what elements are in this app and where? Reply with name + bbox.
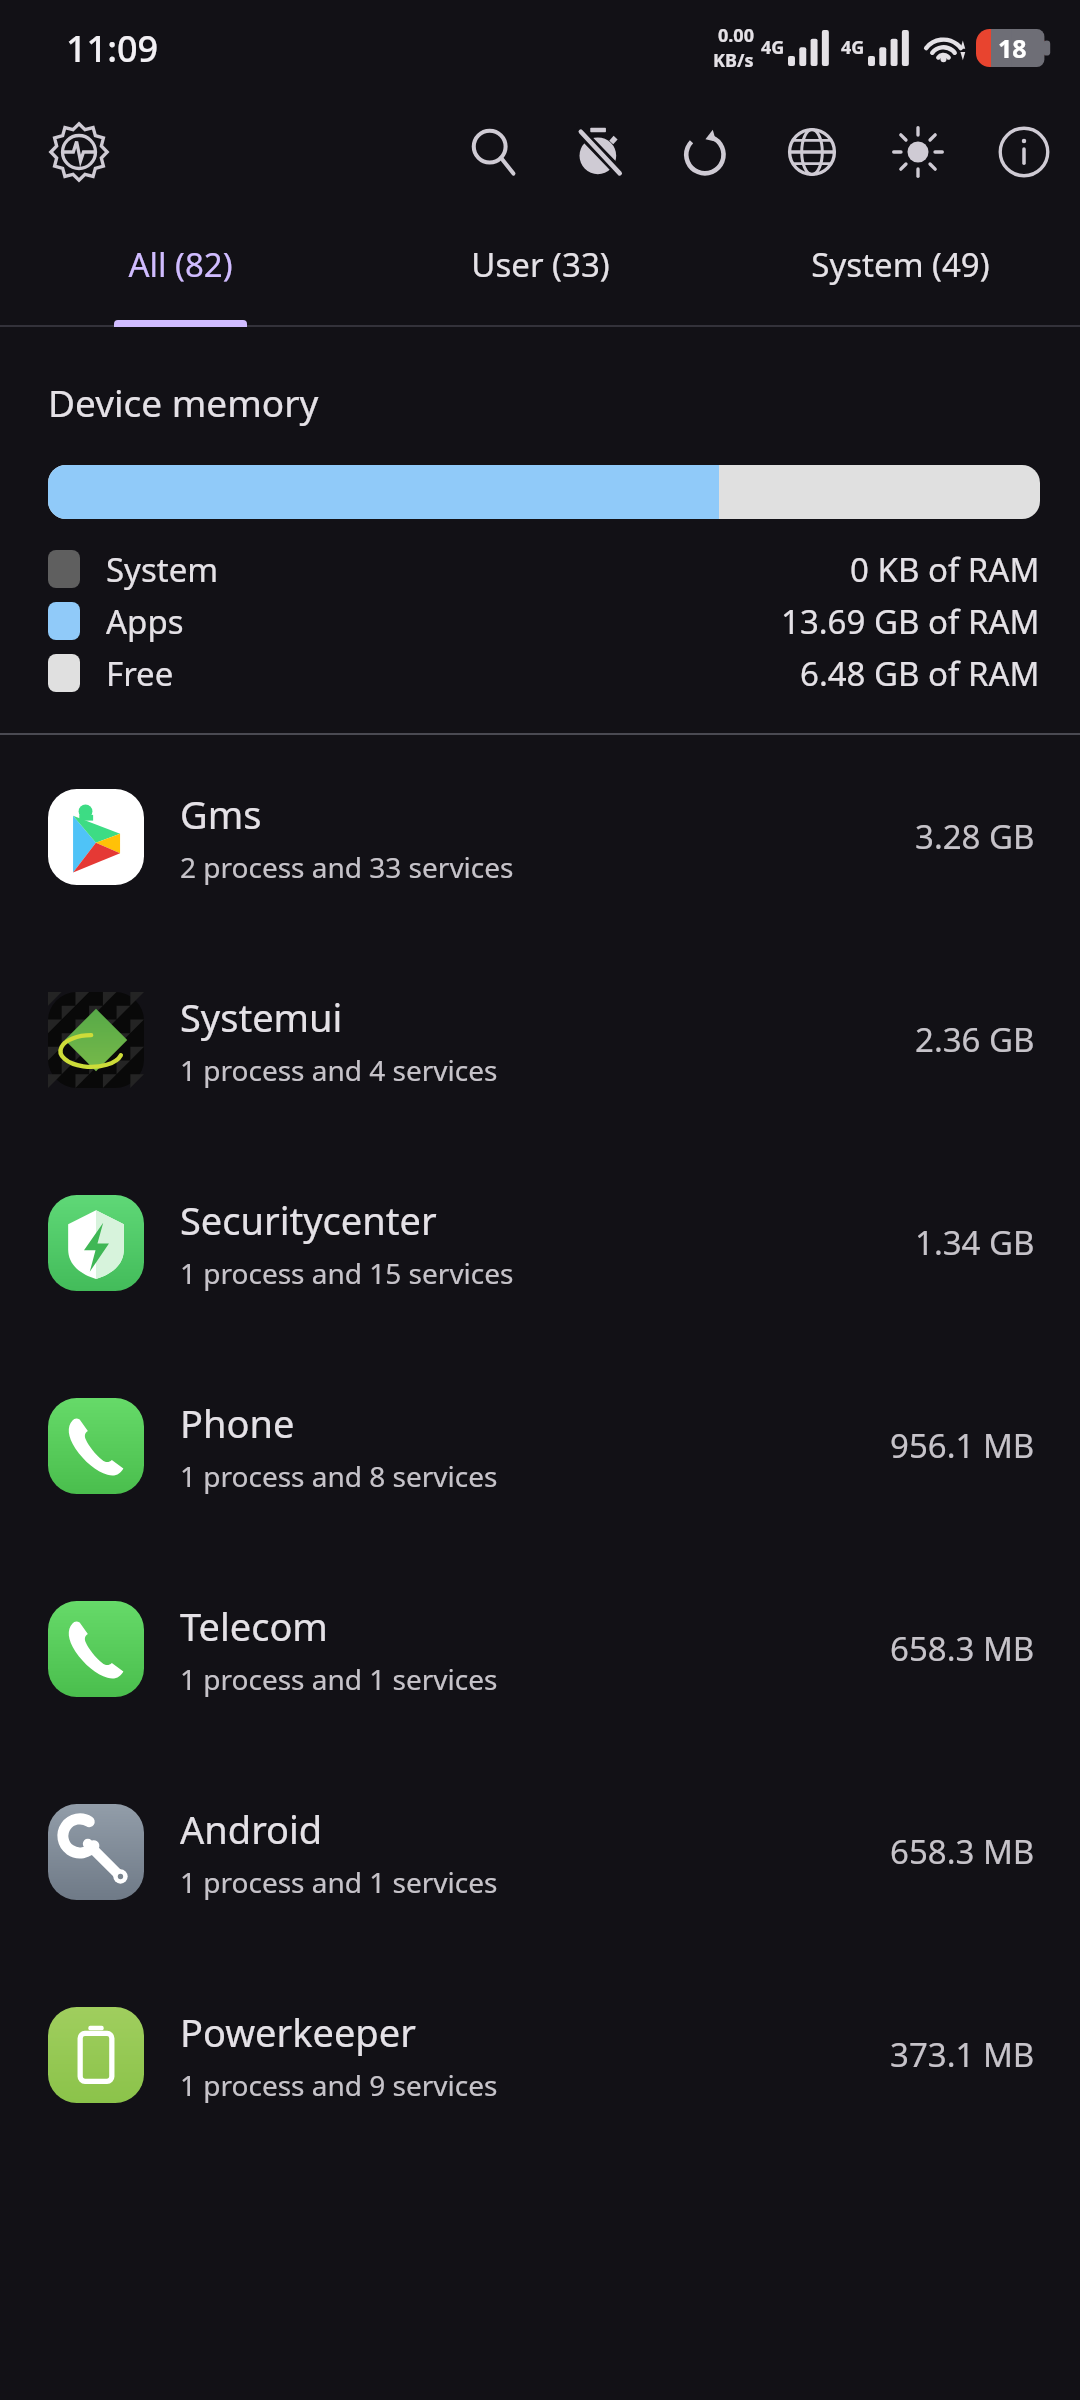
staticText: 658.3 MB bbox=[890, 1626, 1035, 1671]
staticText: Securitycenter bbox=[180, 1194, 437, 1246]
button[interactable]: Systemui bbox=[0, 938, 1080, 1141]
button[interactable]: Search bbox=[458, 116, 530, 188]
staticText: Gms bbox=[180, 788, 262, 840]
button[interactable]: Gms bbox=[0, 735, 1080, 938]
staticText: KB/s bbox=[713, 48, 754, 73]
button[interactable]: Phone bbox=[0, 1344, 1080, 1547]
staticText: 1 process and 1 services bbox=[180, 1660, 498, 1698]
button[interactable]: System (49) bbox=[720, 208, 1080, 320]
staticText: 0.00 bbox=[718, 23, 754, 48]
staticText: All (82) bbox=[128, 242, 233, 287]
staticText: 2.36 GB bbox=[915, 1017, 1035, 1062]
staticText: 956.1 MB bbox=[890, 1423, 1035, 1468]
button[interactable]: Refresh bbox=[670, 116, 742, 188]
staticText: System (49) bbox=[811, 242, 990, 287]
staticText: 0 KB of RAM bbox=[850, 547, 1040, 592]
staticText: Powerkeeper bbox=[180, 2006, 416, 2058]
staticText: Free bbox=[106, 651, 174, 696]
staticText: 658.3 MB bbox=[890, 1829, 1035, 1874]
button[interactable]: Securitycenter bbox=[0, 1141, 1080, 1344]
button[interactable]: Network bbox=[776, 116, 848, 188]
staticText: 1 process and 1 services bbox=[180, 1863, 498, 1901]
staticText: 18 bbox=[998, 31, 1027, 65]
button[interactable]: All (82) bbox=[0, 208, 360, 320]
staticText: User (33) bbox=[471, 242, 610, 287]
button[interactable]: Info bbox=[988, 116, 1060, 188]
staticText: 1 process and 15 services bbox=[180, 1254, 514, 1292]
staticText: 1 process and 4 services bbox=[180, 1051, 498, 1089]
staticText: Systemui bbox=[180, 991, 343, 1043]
staticText: 1 process and 8 services bbox=[180, 1457, 498, 1495]
staticText: 2 process and 33 services bbox=[180, 848, 514, 886]
button[interactable]: Timer off bbox=[564, 116, 636, 188]
staticText: 4G bbox=[761, 35, 785, 60]
staticText: 373.1 MB bbox=[890, 2032, 1035, 2077]
button[interactable]: Telecom bbox=[0, 1547, 1080, 1750]
staticText: 3.28 GB bbox=[915, 814, 1035, 859]
staticText: Phone bbox=[180, 1397, 295, 1449]
staticText: System bbox=[106, 547, 219, 592]
staticText: 1.34 GB bbox=[915, 1220, 1035, 1265]
staticText: Apps bbox=[106, 599, 184, 644]
button[interactable]: Brightness bbox=[882, 116, 954, 188]
button[interactable]: Performance settings bbox=[40, 113, 118, 191]
staticText: 13.69 GB of RAM bbox=[781, 599, 1040, 644]
button[interactable]: User (33) bbox=[360, 208, 720, 320]
staticText: 6.48 GB of RAM bbox=[800, 651, 1040, 696]
staticText: Device memory bbox=[48, 377, 319, 427]
staticText: 1 process and 9 services bbox=[180, 2066, 498, 2104]
staticText: Telecom bbox=[180, 1600, 328, 1652]
staticText: 11:09 bbox=[66, 24, 159, 73]
button[interactable]: Android bbox=[0, 1750, 1080, 1953]
staticText: Android bbox=[180, 1803, 323, 1855]
button[interactable]: Powerkeeper bbox=[0, 1953, 1080, 2156]
staticText: 4G bbox=[841, 35, 865, 60]
